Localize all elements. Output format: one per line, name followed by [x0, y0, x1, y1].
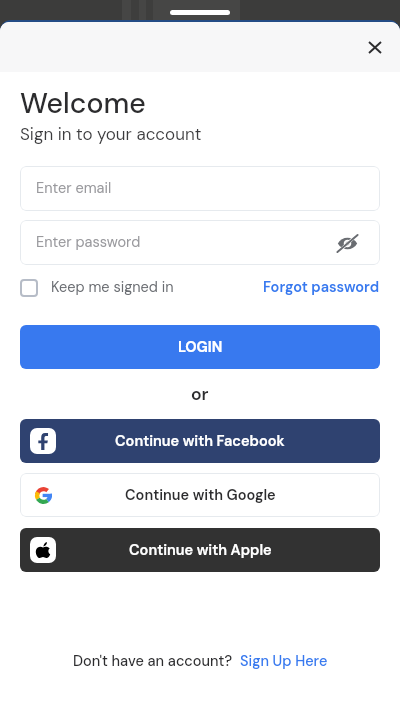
- button[interactable]: Continue with Google: [20, 473, 380, 517]
- staticText: Sign Up Here: [240, 652, 328, 671]
- button[interactable]: Forgot password: [263, 278, 380, 297]
- button[interactable]: Close: [360, 32, 390, 62]
- staticText: LOGIN: [178, 338, 223, 357]
- staticText: Continue with Apple: [129, 541, 272, 560]
- staticText: Enter email: [36, 179, 112, 198]
- button[interactable]: Show password: [335, 231, 359, 255]
- button[interactable]: Continue with Apple: [20, 528, 380, 572]
- button[interactable]: Continue with Facebook: [20, 419, 380, 463]
- staticText: Welcome: [20, 85, 146, 122]
- button[interactable]: Keep me signed in: [20, 278, 174, 297]
- staticText: Continue with Facebook: [115, 432, 285, 451]
- staticText: Don't have an account?: [73, 652, 233, 671]
- staticText: Sign in to your account: [20, 123, 202, 145]
- button[interactable]: Enter email: [20, 166, 380, 211]
- button[interactable]: LOGIN: [20, 325, 380, 369]
- button[interactable]: Enter password: [20, 220, 380, 265]
- button[interactable]: Sign Up Here: [240, 652, 328, 671]
- staticText: Forgot password: [263, 278, 380, 297]
- staticText: Continue with Google: [125, 486, 276, 505]
- staticText: Keep me signed in: [51, 278, 174, 297]
- staticText: Enter password: [36, 233, 141, 252]
- staticText: or: [191, 383, 209, 406]
